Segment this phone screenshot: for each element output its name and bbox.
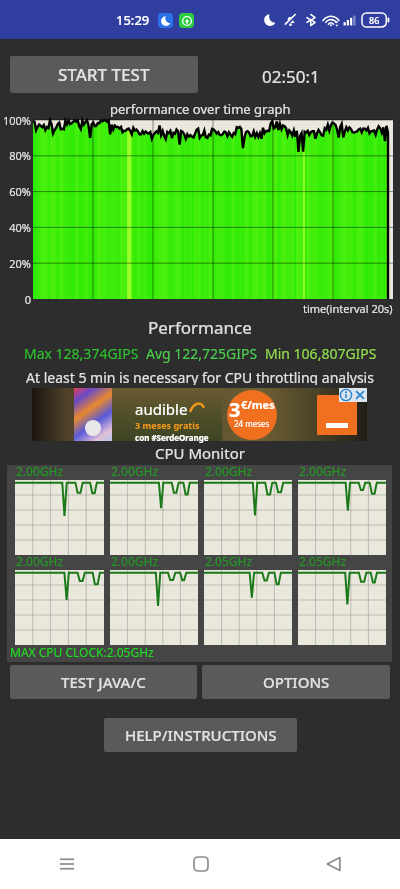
staticText: 2.05GHz: [205, 553, 253, 569]
button[interactable]: Home: [134, 839, 267, 889]
button[interactable]: Recent apps: [0, 839, 134, 889]
staticText: 02:50:1: [262, 65, 320, 88]
staticText: MAX CPU CLOCK:2.05GHz: [10, 644, 154, 660]
staticText: 86: [369, 14, 380, 26]
button[interactable]: HELP/INSTRUCTIONS: [104, 718, 297, 752]
staticText: 20%: [0, 256, 31, 271]
staticText: START TEST: [58, 63, 150, 86]
staticText: 15:29: [116, 11, 150, 29]
button[interactable]: OPTIONS: [202, 665, 390, 699]
staticText: €/mes: [241, 397, 275, 412]
staticText: 0: [0, 292, 31, 307]
staticText: HELP/INSTRUCTIONS: [125, 725, 277, 745]
staticText: 2.05GHz: [299, 553, 347, 569]
staticText: 2.00GHz: [111, 463, 159, 479]
staticText: At least 5 min is necessary for CPU thro…: [26, 368, 374, 385]
staticText: 80%: [0, 148, 31, 163]
button[interactable]: TEST JAVA/C: [10, 665, 197, 699]
button[interactable]: START TEST: [10, 56, 198, 93]
staticText: 2.00GHz: [16, 553, 64, 569]
staticText: Performance: [148, 316, 252, 339]
staticText: 2.00GHz: [299, 463, 347, 479]
staticText: Min 106,807GIPS: [265, 344, 377, 363]
staticText: audible: [135, 399, 188, 419]
staticText: TEST JAVA/C: [61, 672, 146, 692]
staticText: 24 meses: [234, 418, 270, 429]
staticText: con #SerdeOrange: [135, 432, 209, 443]
staticText: 2.00GHz: [111, 553, 159, 569]
staticText: CPU Monitor: [155, 443, 245, 463]
button[interactable]: Back: [267, 839, 400, 889]
staticText: 2.00GHz: [16, 463, 64, 479]
staticText: 2.00GHz: [205, 463, 253, 479]
staticText: performance over time graph: [110, 100, 291, 118]
staticText: OPTIONS: [263, 672, 330, 692]
staticText: 60%: [0, 184, 31, 199]
staticText: 100%: [0, 113, 31, 128]
staticText: time(interval 20s): [303, 301, 393, 316]
staticText: Avg 122,725GIPS: [146, 344, 258, 363]
staticText: Max 128,374GIPS: [24, 344, 139, 363]
staticText: 3 meses gratis: [135, 419, 200, 431]
staticText: 40%: [0, 220, 31, 235]
button[interactable]: audible: [32, 388, 367, 441]
staticText: 3: [229, 396, 241, 423]
